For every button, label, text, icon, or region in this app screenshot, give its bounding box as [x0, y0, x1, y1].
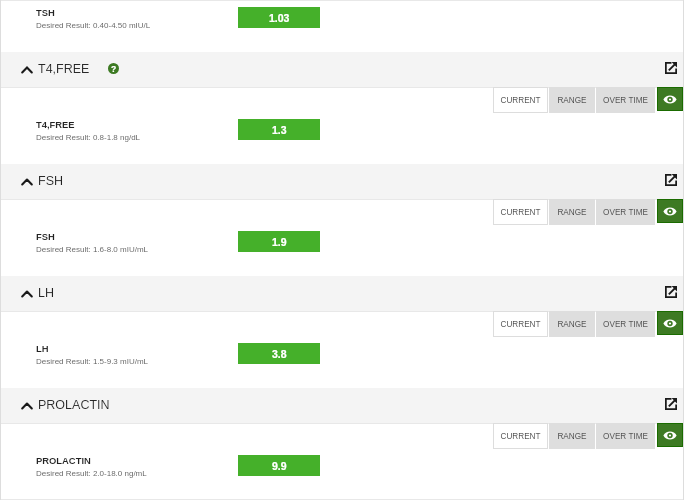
staticText: RANGE [557, 432, 587, 441]
button[interactable]: 1.9 [238, 231, 320, 252]
button[interactable]: View result [658, 312, 682, 334]
button[interactable]: CURRENT [493, 87, 548, 113]
staticText: ? [111, 64, 117, 73]
staticText: CURRENT [500, 432, 541, 441]
staticText: CURRENT [500, 320, 541, 329]
button[interactable]: Help [108, 63, 119, 74]
staticText: CURRENT [500, 96, 541, 105]
button[interactable]: View result [658, 200, 682, 222]
button[interactable]: T4,FREE [0, 113, 684, 164]
staticText: Desired Result: 0.8-1.8 ng/dL [36, 133, 141, 142]
staticText: OVER TIME [603, 432, 648, 441]
staticText: 1.3 [272, 124, 287, 136]
staticText: 1.9 [272, 236, 287, 248]
button[interactable]: LH [0, 337, 684, 388]
button[interactable]: View result [658, 424, 682, 446]
button[interactable]: PROLACTIN [0, 388, 684, 423]
button[interactable]: LH [0, 276, 684, 311]
staticText: OVER TIME [603, 208, 648, 217]
staticText: Desired Result: 1.6-8.0 mIU/mL [36, 245, 149, 254]
staticText: FSH [36, 231, 55, 242]
staticText: RANGE [557, 208, 587, 217]
staticText: OVER TIME [603, 320, 648, 329]
button[interactable]: 1.3 [238, 119, 320, 140]
staticText: 9.9 [272, 460, 287, 472]
staticText: CURRENT [500, 208, 541, 217]
button[interactable]: RANGE [549, 311, 595, 337]
staticText: RANGE [557, 96, 587, 105]
staticText: 3.8 [272, 348, 287, 360]
button[interactable]: OVER TIME [596, 423, 655, 449]
button[interactable]: FSH [0, 164, 684, 199]
button[interactable]: Open in new window [665, 398, 677, 410]
button[interactable]: CURRENT [493, 199, 548, 225]
staticText: FSH [38, 174, 63, 188]
button[interactable]: OVER TIME [596, 87, 655, 113]
button[interactable]: 1.03 [238, 7, 320, 28]
button[interactable]: RANGE [549, 87, 595, 113]
button[interactable]: OVER TIME [596, 199, 655, 225]
button[interactable]: Open in new window [665, 286, 677, 298]
staticText: T4,FREE [38, 62, 90, 76]
button[interactable]: FSH [0, 225, 684, 276]
staticText: PROLACTIN [38, 398, 110, 412]
button[interactable]: 3.8 [238, 343, 320, 364]
button[interactable]: View result [658, 88, 682, 110]
staticText: T4,FREE [36, 119, 75, 130]
staticText: 1.03 [269, 12, 290, 24]
staticText: Desired Result: 2.0-18.0 ng/mL [36, 469, 147, 478]
staticText: PROLACTIN [36, 455, 91, 466]
staticText: TSH [36, 7, 55, 18]
button[interactable]: RANGE [549, 199, 595, 225]
button[interactable]: 9.9 [238, 455, 320, 476]
staticText: Desired Result: 1.5-9.3 mIU/mL [36, 357, 149, 366]
staticText: LH [36, 343, 49, 354]
staticText: RANGE [557, 320, 587, 329]
button[interactable]: PROLACTIN [0, 449, 684, 500]
button[interactable]: Open in new window [665, 174, 677, 186]
button[interactable]: TSH [0, 1, 684, 52]
button[interactable]: T4,FREE [0, 52, 684, 87]
button[interactable]: RANGE [549, 423, 595, 449]
button[interactable]: Open in new window [665, 62, 677, 74]
button[interactable]: CURRENT [493, 423, 548, 449]
staticText: LH [38, 286, 54, 300]
button[interactable]: CURRENT [493, 311, 548, 337]
staticText: OVER TIME [603, 96, 648, 105]
staticText: Desired Result: 0.40-4.50 mIU/L [36, 21, 151, 30]
button[interactable]: OVER TIME [596, 311, 655, 337]
